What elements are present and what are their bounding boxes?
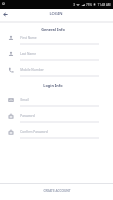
button[interactable]: First Name [0,32,113,45]
staticText: Confirm Password [20,130,48,134]
staticText: Password [20,114,35,118]
staticText: Email [20,98,29,102]
staticText: 3 [73,3,75,7]
button[interactable]: Last Name [0,48,113,61]
staticText: LOGIN [49,11,63,17]
button[interactable]: Back [0,9,10,19]
button[interactable]: Confirm Password [0,126,113,139]
staticText: General Info [41,27,65,32]
staticText: Mobile Number [20,68,44,72]
staticText: Login Info [43,83,63,88]
button[interactable]: Password [0,110,113,123]
staticText: CREATE ACCOUNT [43,189,71,193]
staticText: Last Name [20,52,36,56]
button[interactable]: Mobile Number [0,64,113,77]
button[interactable]: Email [0,94,113,107]
staticText: 11:48 AM [97,3,111,7]
button[interactable]: CREATE ACCOUNT [0,184,113,200]
staticText: 75% [86,3,92,7]
staticText: First Name [20,36,37,40]
